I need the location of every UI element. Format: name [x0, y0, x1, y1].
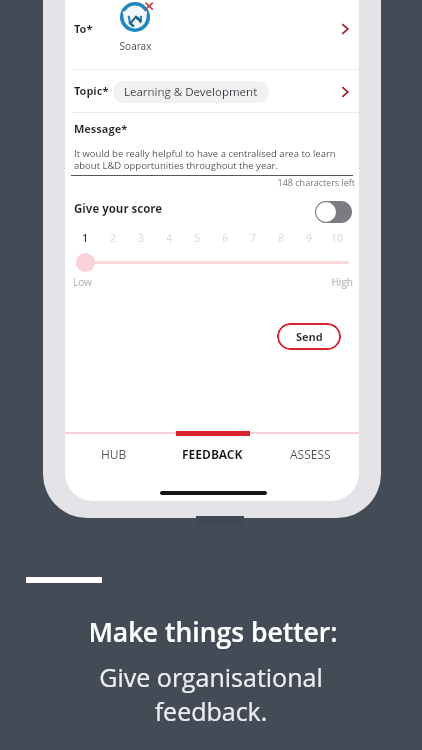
- staticText: Give organisational feedback.: [0, 660, 422, 729]
- staticText: Low: [73, 275, 92, 289]
- staticText: To*: [74, 21, 93, 36]
- button[interactable]: Toggle score: [315, 201, 352, 223]
- staticText: 7: [243, 231, 263, 245]
- button[interactable]: Score slider: [76, 253, 95, 272]
- staticText: 10: [327, 231, 347, 245]
- staticText: Message*: [74, 121, 128, 136]
- button[interactable]: Open: [338, 21, 354, 37]
- button[interactable]: HUB: [65, 441, 163, 467]
- staticText: 1: [75, 231, 95, 245]
- button[interactable]: Learning & Development: [113, 81, 269, 103]
- staticText: Give your score: [74, 201, 163, 217]
- staticText: Send: [296, 329, 323, 344]
- staticText: 6: [215, 231, 235, 245]
- staticText: Topic*: [74, 83, 109, 98]
- button[interactable]: Open: [338, 84, 354, 100]
- staticText: 3: [131, 231, 151, 245]
- staticText: 148 characters left: [261, 176, 355, 188]
- button[interactable]: Soarax recipient: [120, 2, 150, 32]
- staticText: 2: [103, 231, 123, 245]
- staticText: High: [320, 275, 353, 289]
- button[interactable]: FEEDBACK: [163, 441, 261, 467]
- staticText: 4: [159, 231, 179, 245]
- staticText: 9: [299, 231, 319, 245]
- staticText: 8: [271, 231, 291, 245]
- staticText: Make things better:: [2, 614, 422, 650]
- staticText: Soarax: [113, 39, 158, 53]
- staticText: HUB: [101, 446, 127, 462]
- staticText: FEEDBACK: [182, 446, 243, 462]
- staticText: ASSESS: [290, 446, 331, 462]
- button[interactable]: Send: [277, 323, 341, 350]
- staticText: 5: [187, 231, 207, 245]
- button[interactable]: ASSESS: [261, 441, 359, 467]
- staticText: Learning & Development: [124, 84, 258, 100]
- staticText: It would be really helpful to have a cen…: [74, 147, 342, 172]
